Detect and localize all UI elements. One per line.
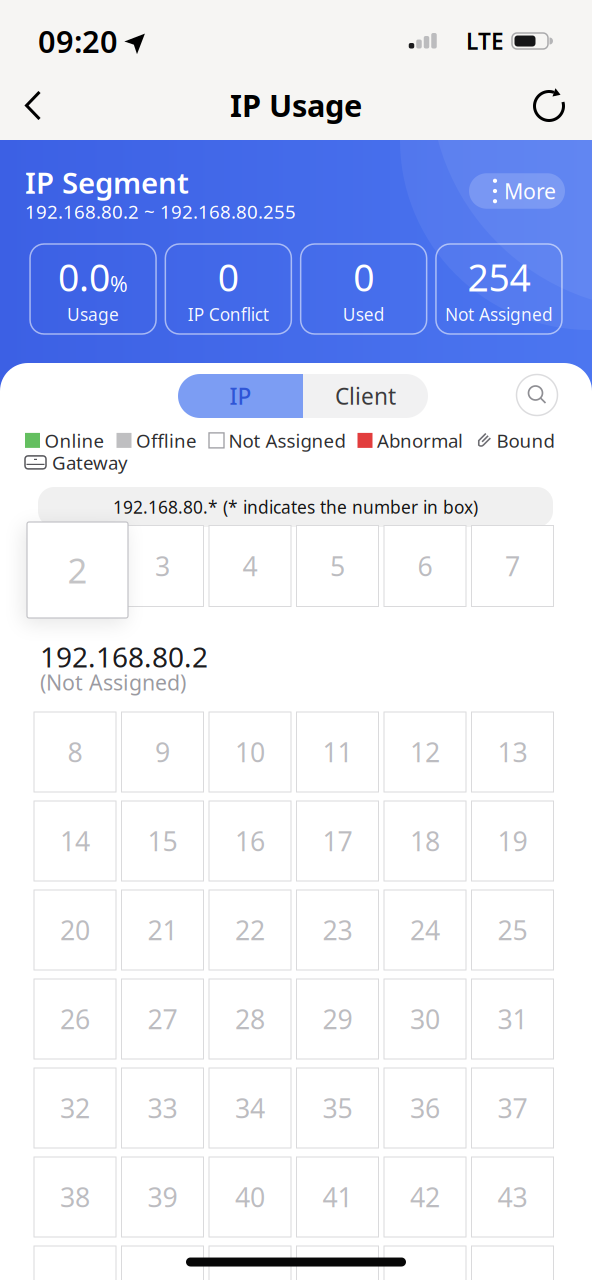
button[interactable]: 34 (209, 1068, 291, 1148)
staticText: Gateway (52, 450, 128, 475)
staticText: 6 (417, 548, 432, 584)
staticText: Online (44, 428, 104, 453)
staticText: 26 (60, 1001, 90, 1037)
staticText: 0 (218, 252, 239, 302)
button[interactable]: 39 (121, 1157, 203, 1237)
button[interactable]: 47 (296, 1246, 378, 1280)
button[interactable]: 14 (34, 801, 116, 881)
button[interactable]: 21 (121, 890, 203, 970)
staticText: Abnormal (377, 428, 463, 453)
staticText: Bound (496, 428, 554, 453)
button[interactable]: 9 (121, 712, 203, 792)
staticText: 4 (242, 548, 257, 584)
button[interactable]: 36 (384, 1068, 466, 1148)
staticText: 19 (497, 823, 527, 859)
staticText: 23 (322, 912, 352, 948)
staticText: 8 (67, 734, 82, 770)
staticText: 3 (155, 548, 170, 584)
button[interactable]: 32 (34, 1068, 116, 1148)
button[interactable]: Refresh (527, 84, 571, 128)
button[interactable]: 38 (34, 1157, 116, 1237)
staticText: Offline (136, 428, 197, 453)
button[interactable]: 37 (471, 1068, 553, 1148)
button[interactable]: 29 (296, 979, 378, 1059)
button[interactable]: 42 (384, 1157, 466, 1237)
staticText: 30 (410, 1001, 440, 1037)
staticText: 27 (147, 1001, 177, 1037)
button[interactable]: 16 (209, 801, 291, 881)
button[interactable]: 40 (209, 1157, 291, 1237)
button[interactable]: Client (303, 374, 428, 418)
button[interactable]: Search (513, 371, 561, 419)
button[interactable]: 2 (27, 522, 128, 618)
button[interactable]: 17 (296, 801, 378, 881)
staticText: 5 (330, 548, 345, 584)
staticText: IP Segment (25, 163, 189, 202)
staticText: 0 (353, 252, 374, 302)
staticText: 35 (322, 1090, 352, 1126)
staticText: 9 (155, 734, 170, 770)
button[interactable]: 15 (121, 801, 203, 881)
button[interactable]: 19 (471, 801, 553, 881)
staticText: 42 (410, 1179, 440, 1215)
button[interactable]: 49 (471, 1246, 553, 1280)
button[interactable]: 20 (34, 890, 116, 970)
button[interactable]: 46 (209, 1246, 291, 1280)
staticText: 12 (410, 734, 440, 770)
button[interactable]: 27 (121, 979, 203, 1059)
button[interactable]: 48 (384, 1246, 466, 1280)
button[interactable]: 10 (209, 712, 291, 792)
staticText: 14 (60, 823, 90, 859)
button[interactable]: 12 (384, 712, 466, 792)
staticText: 32 (60, 1090, 90, 1126)
button[interactable]: 11 (296, 712, 378, 792)
staticText: 25 (497, 912, 527, 948)
staticText: 09:20 (38, 21, 118, 61)
staticText: 20 (60, 912, 90, 948)
button[interactable]: 22 (209, 890, 291, 970)
staticText: 15 (147, 823, 177, 859)
staticText: 34 (235, 1090, 265, 1126)
staticText: 21 (147, 912, 177, 948)
button[interactable]: 3 (121, 525, 203, 606)
staticText: 13 (497, 734, 527, 770)
button[interactable]: 24 (384, 890, 466, 970)
staticText: Not Assigned (445, 303, 553, 326)
staticText: Used (343, 303, 385, 326)
button[interactable]: 25 (471, 890, 553, 970)
button[interactable]: Back (12, 83, 56, 127)
button[interactable]: 31 (471, 979, 553, 1059)
button[interactable]: 7 (471, 525, 553, 606)
staticText: 22 (235, 912, 265, 948)
button[interactable]: 35 (296, 1068, 378, 1148)
button[interactable]: IP (178, 374, 303, 418)
staticText: 7 (505, 548, 520, 584)
staticText: 254 (467, 252, 530, 302)
button[interactable]: 41 (296, 1157, 378, 1237)
button[interactable]: 28 (209, 979, 291, 1059)
button[interactable]: 44 (34, 1246, 116, 1280)
staticText: More (504, 177, 556, 205)
button[interactable]: 45 (121, 1246, 203, 1280)
staticText: (Not Assigned) (40, 668, 186, 696)
button[interactable]: 13 (471, 712, 553, 792)
staticText: 41 (322, 1179, 352, 1215)
staticText: 28 (235, 1001, 265, 1037)
staticText: 37 (497, 1090, 527, 1126)
button[interactable]: 23 (296, 890, 378, 970)
button[interactable]: 6 (384, 525, 466, 606)
button[interactable]: 8 (34, 712, 116, 792)
button[interactable]: 30 (384, 979, 466, 1059)
button[interactable]: More (469, 173, 565, 209)
button[interactable]: 5 (296, 525, 378, 606)
staticText: Not Assigned (228, 428, 345, 453)
button[interactable]: 26 (34, 979, 116, 1059)
staticText: 38 (60, 1179, 90, 1215)
staticText: 192.168.80.2 ~ 192.168.80.255 (25, 199, 296, 224)
button[interactable]: 43 (471, 1157, 553, 1237)
button[interactable]: 4 (209, 525, 291, 606)
button[interactable]: 33 (121, 1068, 203, 1148)
button[interactable]: 18 (384, 801, 466, 881)
staticText: LTE (466, 26, 504, 56)
staticText: 10 (235, 734, 265, 770)
